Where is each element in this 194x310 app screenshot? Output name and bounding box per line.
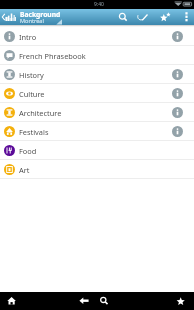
button[interactable]: About Culture bbox=[161, 84, 194, 103]
staticText: Food bbox=[19, 146, 37, 156]
button[interactable]: About Architecture bbox=[161, 103, 194, 122]
button[interactable]: About Festivals bbox=[161, 122, 194, 141]
staticText: 9:40 bbox=[94, 1, 104, 8]
button[interactable]: Search bbox=[94, 292, 114, 310]
button[interactable]: Culture bbox=[0, 84, 194, 103]
staticText: Architecture bbox=[19, 108, 62, 118]
button[interactable]: Search bbox=[114, 9, 133, 25]
button[interactable]: French Phrasebook bbox=[0, 46, 194, 65]
button[interactable]: About History bbox=[161, 65, 194, 84]
button[interactable]: Food bbox=[0, 141, 194, 160]
staticText: Art bbox=[19, 165, 30, 175]
button[interactable]: Architecture bbox=[0, 103, 194, 122]
staticText: Montreal bbox=[20, 17, 44, 25]
button[interactable]: Edit bbox=[133, 9, 155, 25]
button[interactable]: Home bbox=[0, 292, 23, 310]
button[interactable]: Back bbox=[74, 292, 94, 310]
button[interactable]: Intro bbox=[0, 27, 194, 46]
staticText: Culture bbox=[19, 89, 45, 99]
staticText: History bbox=[19, 70, 44, 80]
staticText: Background bbox=[20, 10, 61, 19]
button[interactable]: More options bbox=[176, 9, 194, 25]
staticText: Festivals bbox=[19, 127, 49, 137]
button[interactable]: About Intro bbox=[161, 27, 194, 46]
button[interactable]: Festivals bbox=[0, 122, 194, 141]
button[interactable]: Art bbox=[0, 160, 194, 179]
button[interactable]: Navigate up bbox=[0, 9, 20, 25]
staticText: French Phrasebook bbox=[19, 51, 86, 61]
button[interactable]: Favorites bbox=[167, 292, 194, 310]
staticText: Intro bbox=[19, 32, 37, 42]
button[interactable]: History bbox=[0, 65, 194, 84]
button[interactable]: Favorite bbox=[155, 9, 176, 25]
